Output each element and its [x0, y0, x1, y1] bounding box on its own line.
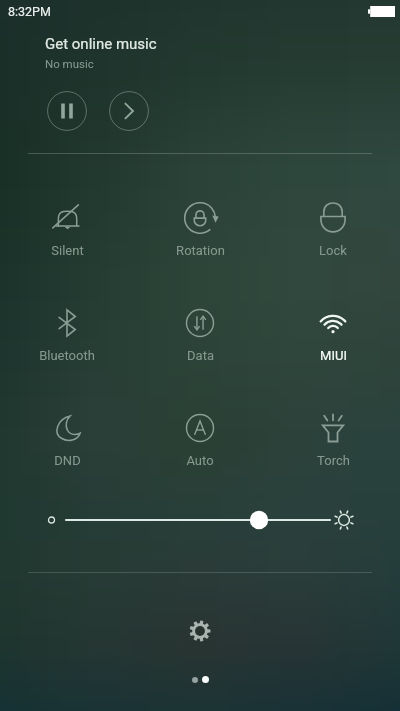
- staticText: 8:32PM: [8, 4, 51, 19]
- button[interactable]: Next: [107, 89, 151, 133]
- staticText: Torch: [317, 453, 350, 468]
- staticText: Data: [187, 348, 214, 363]
- button[interactable]: Settings: [180, 611, 220, 651]
- staticText: Bluetooth: [39, 348, 95, 363]
- staticText: MIUI: [320, 348, 347, 363]
- button[interactable]: MIUI: [277, 297, 389, 361]
- staticText: No music: [45, 57, 94, 70]
- staticText: Get online music: [45, 35, 157, 53]
- button[interactable]: Pause: [45, 89, 89, 133]
- staticText: DND: [54, 453, 81, 468]
- button[interactable]: Lock: [277, 192, 389, 256]
- button[interactable]: Auto: [144, 402, 256, 466]
- staticText: Lock: [319, 243, 347, 258]
- button[interactable]: Silent: [11, 192, 123, 256]
- staticText: Silent: [51, 243, 84, 258]
- button[interactable]: Data: [144, 297, 256, 361]
- button[interactable]: Bluetooth: [11, 297, 123, 361]
- staticText: Auto: [186, 453, 214, 468]
- button[interactable]: DND: [11, 402, 123, 466]
- button[interactable]: Rotation: [144, 192, 256, 256]
- staticText: Rotation: [176, 243, 225, 258]
- button[interactable]: Torch: [277, 402, 389, 466]
- button[interactable]: Brightness: [28, 498, 400, 542]
